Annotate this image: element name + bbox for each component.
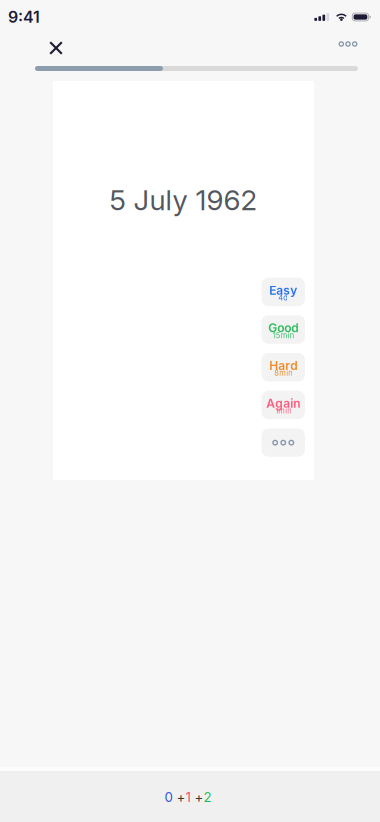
button[interactable]: More bbox=[261, 428, 305, 457]
button[interactable]: More options bbox=[331, 31, 365, 57]
staticText: Hard bbox=[269, 358, 297, 373]
staticText: 15min bbox=[273, 331, 294, 340]
button[interactable]: Good bbox=[261, 315, 305, 344]
button[interactable]: Close bbox=[39, 33, 73, 63]
staticText: + bbox=[172, 789, 185, 805]
staticText: Good bbox=[268, 321, 298, 335]
staticText: 4d bbox=[278, 293, 288, 302]
staticText: 8min bbox=[274, 369, 292, 378]
staticText: 2 bbox=[203, 789, 211, 805]
staticText: Again bbox=[266, 396, 300, 411]
button[interactable]: Easy bbox=[261, 278, 305, 306]
staticText: Easy bbox=[269, 283, 297, 297]
staticText: 5 July 1962 bbox=[109, 183, 257, 217]
staticText: 1 bbox=[185, 789, 190, 805]
staticText: 1min bbox=[275, 406, 291, 415]
staticText: 9:41 bbox=[8, 7, 40, 27]
staticText: 0 bbox=[164, 789, 172, 805]
staticText: + bbox=[190, 789, 203, 805]
button[interactable]: Hard bbox=[261, 353, 305, 381]
button[interactable]: Again bbox=[261, 391, 305, 419]
